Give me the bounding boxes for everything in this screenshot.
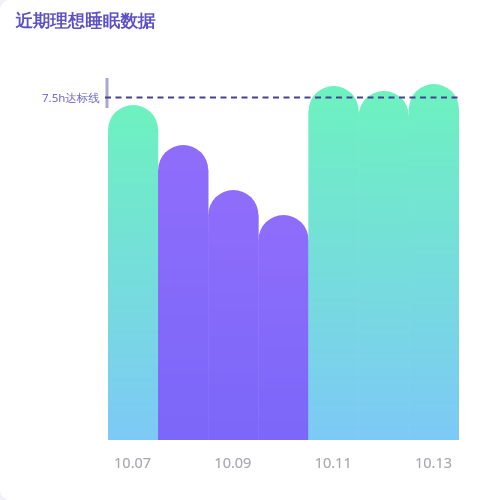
button[interactable]: 近期理想睡眠数据图表	[0, 0, 500, 500]
